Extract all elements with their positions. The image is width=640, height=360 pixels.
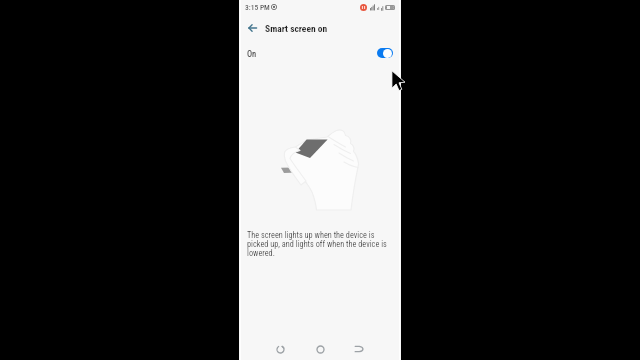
- button[interactable]: Recent apps: [270, 339, 290, 359]
- button[interactable]: On: [239, 42, 401, 65]
- button[interactable]: Back: [349, 339, 369, 359]
- staticText: Smart screen on: [265, 23, 328, 34]
- button[interactable]: Home: [310, 339, 330, 359]
- staticText: 3:15 PM: [245, 3, 270, 12]
- button[interactable]: Back: [242, 18, 262, 38]
- staticText: The screen lights up when the device is …: [247, 230, 390, 258]
- staticText: On: [247, 49, 257, 59]
